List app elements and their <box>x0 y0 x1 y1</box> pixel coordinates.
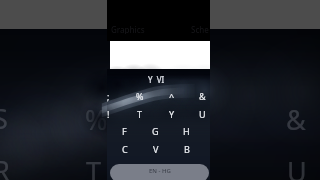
staticText: ; <box>107 90 110 102</box>
staticText: R <box>0 152 10 180</box>
staticText: F <box>122 125 127 137</box>
staticText: G <box>152 125 159 137</box>
staticText: T <box>137 108 143 120</box>
button[interactable]: C <box>109 140 140 158</box>
staticText: H <box>183 125 190 137</box>
button[interactable]: Schedule <box>191 24 210 34</box>
staticText: ! <box>107 108 110 120</box>
staticText: U <box>199 108 206 120</box>
staticText: C <box>122 143 128 155</box>
button[interactable]: F <box>109 122 140 140</box>
staticText: EN - HG <box>149 167 171 175</box>
button[interactable]: Graphics <box>111 24 151 34</box>
button[interactable]: H <box>171 122 202 140</box>
staticText: V <box>153 143 159 155</box>
staticText: T <box>86 153 102 180</box>
button[interactable]: G <box>140 122 171 140</box>
button[interactable]: ! <box>93 105 124 123</box>
button[interactable]: V <box>140 140 171 158</box>
staticText: & <box>199 90 206 102</box>
staticText: B <box>184 143 190 155</box>
button[interactable]: & <box>187 87 218 105</box>
button[interactable]: Y <box>156 105 187 123</box>
staticText: & <box>286 101 306 138</box>
button[interactable]: B <box>171 140 202 158</box>
button[interactable]: T <box>124 105 155 123</box>
staticText: Schedule <box>191 24 210 34</box>
staticText: U <box>287 153 307 180</box>
button[interactable]: ; <box>93 87 124 105</box>
button[interactable]: % <box>124 87 155 105</box>
staticText: % <box>85 101 108 138</box>
staticText: ^ <box>169 90 175 102</box>
staticText: Y VI <box>148 74 165 85</box>
staticText: Graphics <box>111 24 145 34</box>
staticText: Y <box>169 108 175 120</box>
button[interactable]: U <box>187 105 218 123</box>
button[interactable]: EN - HG <box>110 164 209 180</box>
button[interactable]: ^ <box>156 87 187 105</box>
staticText: % <box>136 90 144 102</box>
staticText: S <box>0 100 8 137</box>
